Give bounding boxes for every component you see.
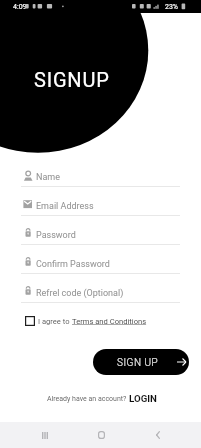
button[interactable]: Email Address [21, 196, 180, 225]
button[interactable]: Name [21, 167, 180, 196]
button[interactable]: I agree to [25, 316, 147, 326]
staticText: SIGNUP [34, 68, 110, 91]
button[interactable]: Password [21, 225, 180, 254]
staticText: SIGN UP [117, 357, 159, 369]
staticText: Refrel code (Optional) [36, 288, 124, 299]
button[interactable]: Recent apps [25, 422, 65, 448]
button[interactable]: Confirm Password [21, 254, 180, 283]
staticText: Confirm Password [36, 259, 110, 270]
button[interactable]: LOGIN [129, 393, 157, 404]
staticText: Already have an account? [47, 395, 129, 403]
button[interactable]: Back [138, 422, 178, 448]
staticText: Name [36, 172, 60, 183]
staticText: Password [36, 230, 76, 241]
staticText: 4:09 [13, 3, 27, 11]
button[interactable]: SIGN UP [93, 349, 189, 375]
button[interactable]: Home [81, 422, 121, 448]
staticText: 23% [165, 3, 178, 11]
staticText: Email Address [36, 201, 94, 212]
button[interactable]: Refrel code (Optional) [21, 283, 180, 312]
staticText: I agree to [38, 317, 72, 326]
staticText: Terms and Conditions [72, 317, 147, 326]
